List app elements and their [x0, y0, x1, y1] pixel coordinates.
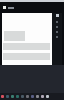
button[interactable]: App	[11, 95, 14, 98]
button[interactable]: App	[1, 95, 4, 98]
button[interactable]: App	[6, 95, 9, 98]
button[interactable]: App	[16, 95, 19, 98]
button[interactable]: App	[26, 95, 29, 98]
button[interactable]: App	[21, 95, 24, 98]
button[interactable]: Activity	[3, 2, 64, 13]
button[interactable]: App	[31, 95, 34, 98]
button[interactable]: App	[41, 95, 44, 98]
button[interactable]: App	[46, 95, 49, 98]
button[interactable]: App	[36, 95, 39, 98]
